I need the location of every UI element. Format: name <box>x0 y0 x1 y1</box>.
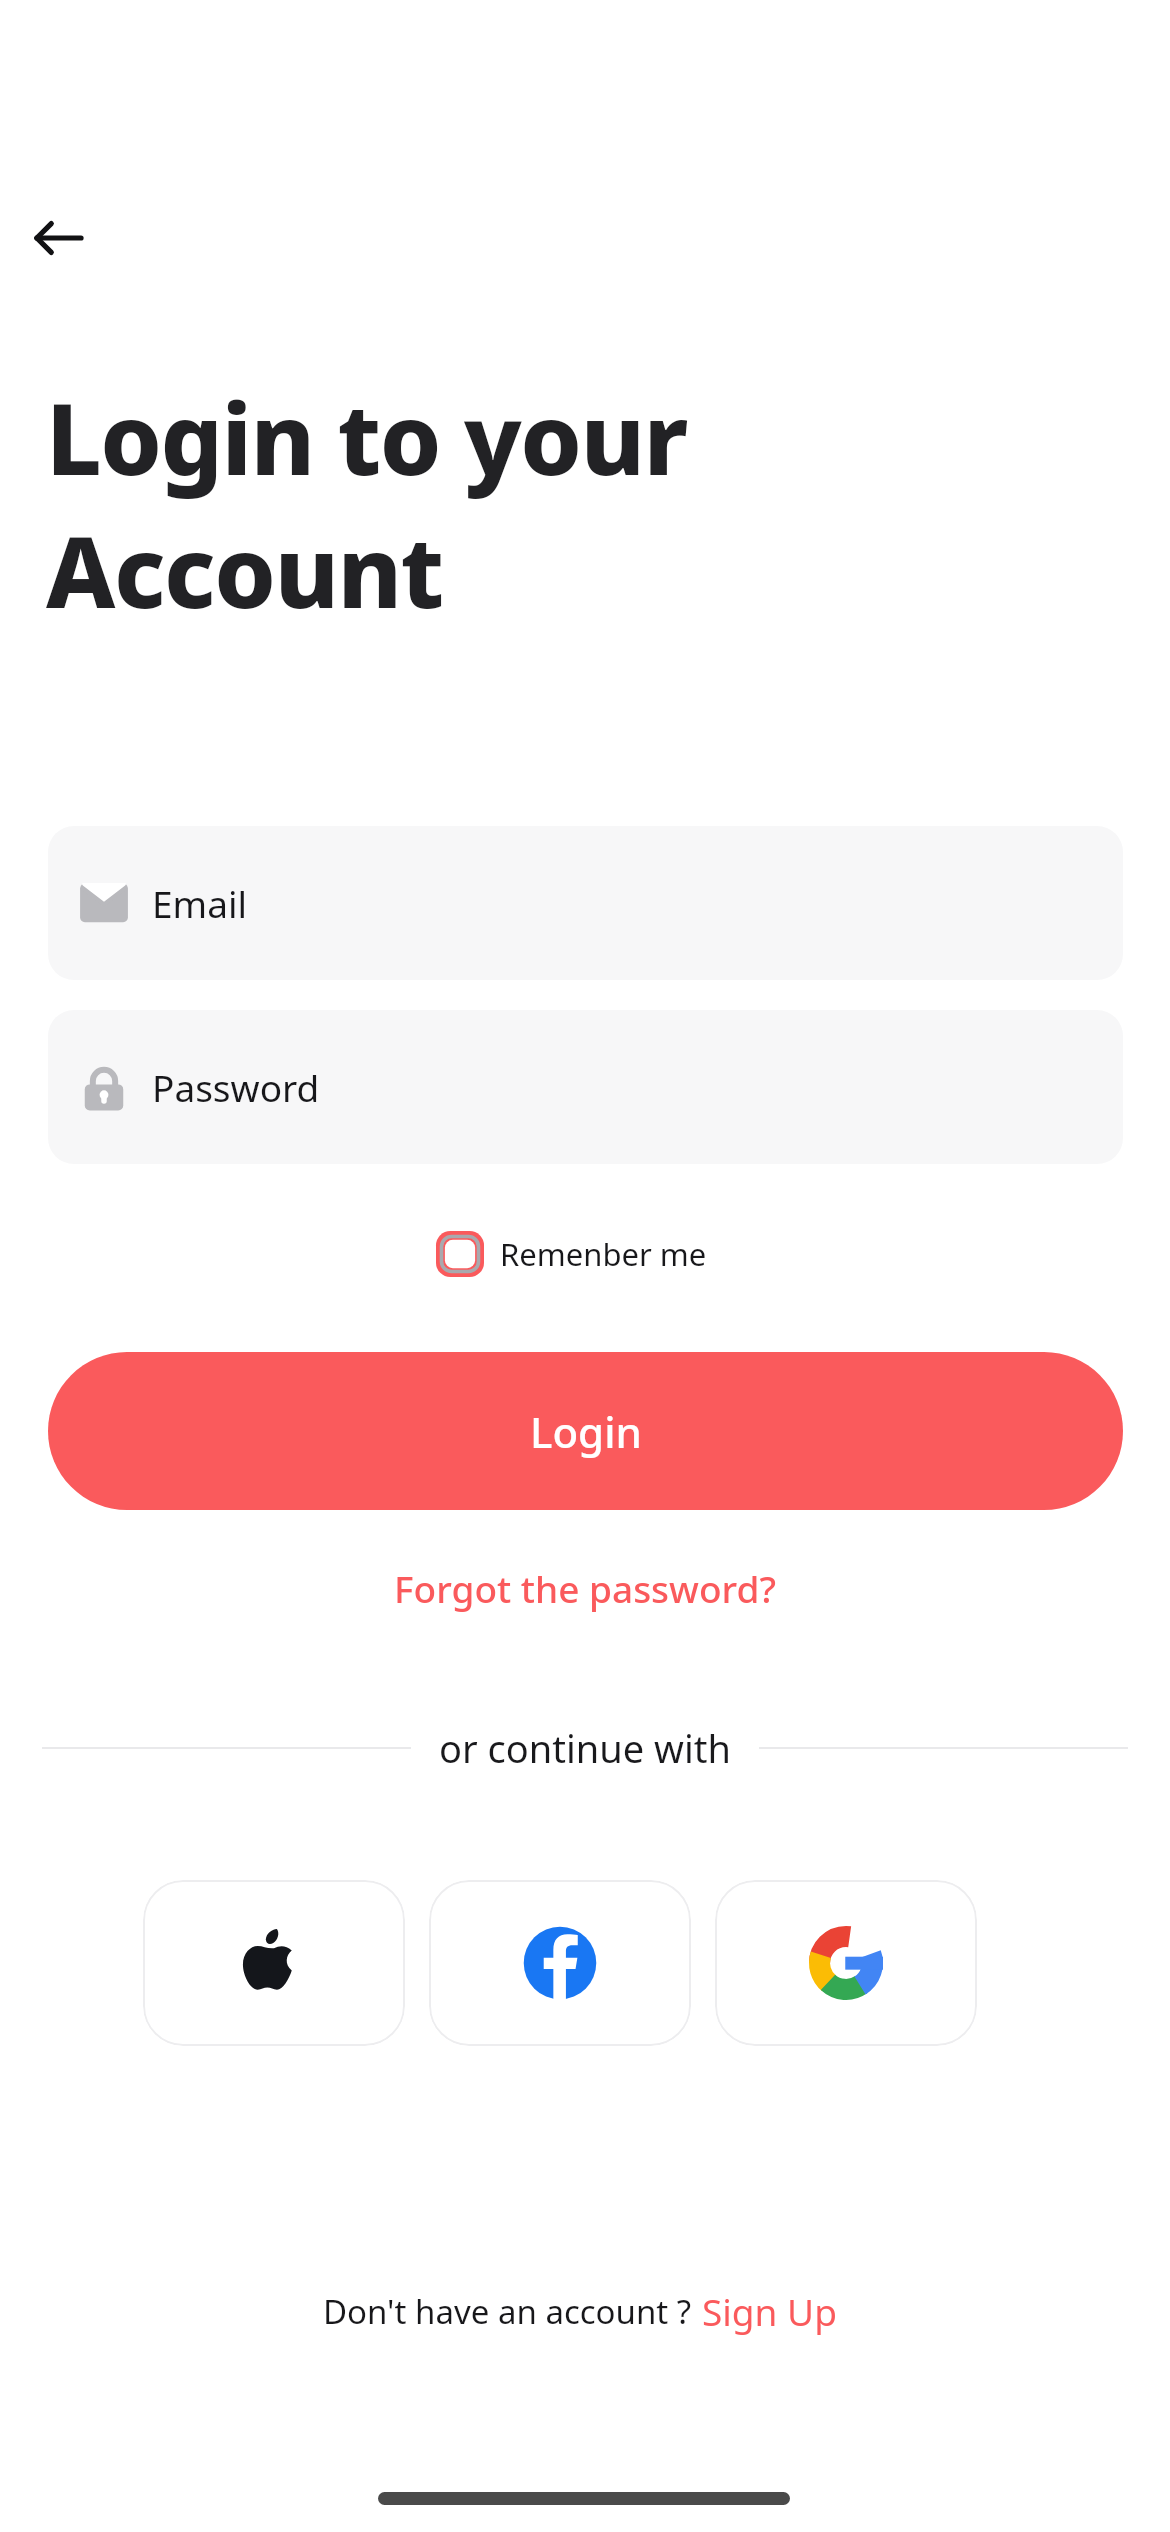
button[interactable]: Password <box>48 1010 1123 1164</box>
button[interactable]: Sign in with Facebook <box>429 1880 691 2046</box>
button[interactable]: Forgot the password? <box>330 1552 840 1624</box>
staticText: Forgot the password? <box>394 1563 776 1613</box>
staticText: Login <box>530 1403 642 1460</box>
button[interactable]: Sign in with Apple <box>143 1880 405 2046</box>
button[interactable]: Remenber me <box>436 1230 707 1278</box>
staticText: Remenber me <box>500 1233 707 1275</box>
staticText: Email <box>152 878 248 928</box>
button[interactable]: Sign Up <box>692 2282 847 2340</box>
staticText: Login to your <box>46 370 687 503</box>
button[interactable]: Email <box>48 826 1123 980</box>
staticText: Sign Up <box>702 2286 837 2336</box>
staticText: Don't have an account ? <box>323 2289 692 2334</box>
button[interactable]: Back <box>20 200 96 276</box>
button[interactable]: Sign in with Google <box>715 1880 977 2046</box>
staticText: Password <box>152 1062 320 1112</box>
button[interactable]: Login <box>48 1352 1123 1510</box>
staticText: or continue with <box>439 1722 731 1774</box>
staticText: Account <box>46 503 443 636</box>
